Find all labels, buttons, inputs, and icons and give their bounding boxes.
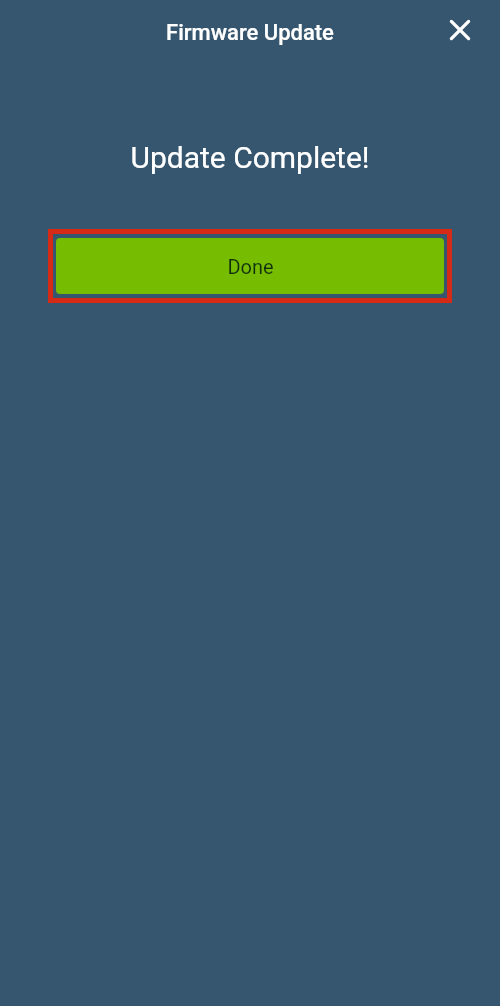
- staticText: Update Complete!: [0, 140, 500, 175]
- staticText: Done: [227, 255, 274, 278]
- button[interactable]: Close: [436, 6, 484, 54]
- staticText: Firmware Update: [0, 20, 500, 46]
- button[interactable]: Done: [56, 238, 444, 294]
